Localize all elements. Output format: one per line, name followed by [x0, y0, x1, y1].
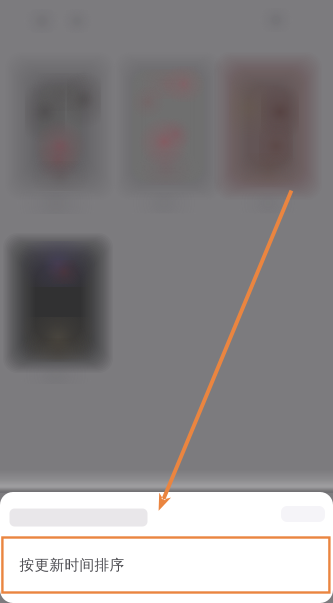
button[interactable]: 按更新时间排序 — [2, 537, 329, 592]
staticText: 按更新时间排序 — [19, 556, 124, 574]
